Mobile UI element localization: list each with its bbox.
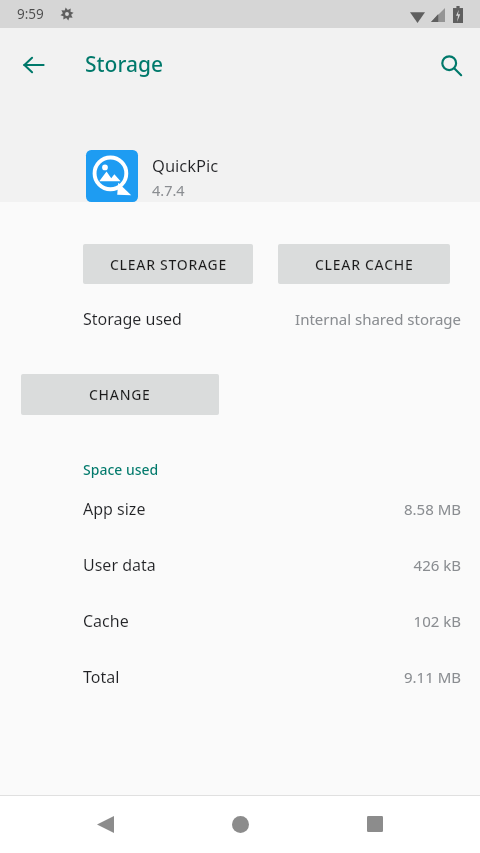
staticText: Cache [83, 610, 129, 632]
staticText: 8.58 MB [0, 499, 461, 519]
button[interactable]: Storage used [0, 299, 480, 341]
button[interactable]: Home [216, 800, 264, 848]
button[interactable]: CLEAR STORAGE [83, 244, 253, 284]
button[interactable]: Total [0, 656, 480, 700]
staticText: CLEAR STORAGE [110, 255, 227, 274]
button[interactable]: CHANGE [21, 374, 219, 415]
staticText: Total [83, 666, 120, 688]
staticText: 9.11 MB [0, 667, 461, 687]
staticText: 426 kB [0, 555, 461, 575]
button[interactable]: App size [0, 488, 480, 532]
staticText: 9:59 [17, 5, 44, 23]
staticText: Internal shared storage [0, 309, 461, 329]
button[interactable]: Search [427, 41, 475, 89]
button[interactable]: Cache [0, 600, 480, 644]
button[interactable]: QuickPic [86, 136, 480, 198]
staticText: CLEAR CACHE [315, 255, 414, 274]
staticText: App size [83, 498, 146, 520]
staticText: User data [83, 554, 156, 576]
button[interactable]: Back [81, 800, 129, 848]
staticText: Storage [85, 50, 163, 79]
staticText: Storage used [83, 308, 182, 330]
button[interactable]: Back [10, 41, 58, 89]
button[interactable]: User data [0, 544, 480, 588]
staticText: 102 kB [0, 611, 461, 631]
staticText: CHANGE [89, 385, 151, 404]
staticText: QuickPic [152, 154, 219, 176]
button[interactable]: Recent apps [351, 800, 399, 848]
staticText: 4.7.4 [152, 180, 185, 200]
staticText: Space used [83, 460, 159, 479]
button[interactable]: CLEAR CACHE [278, 244, 450, 284]
